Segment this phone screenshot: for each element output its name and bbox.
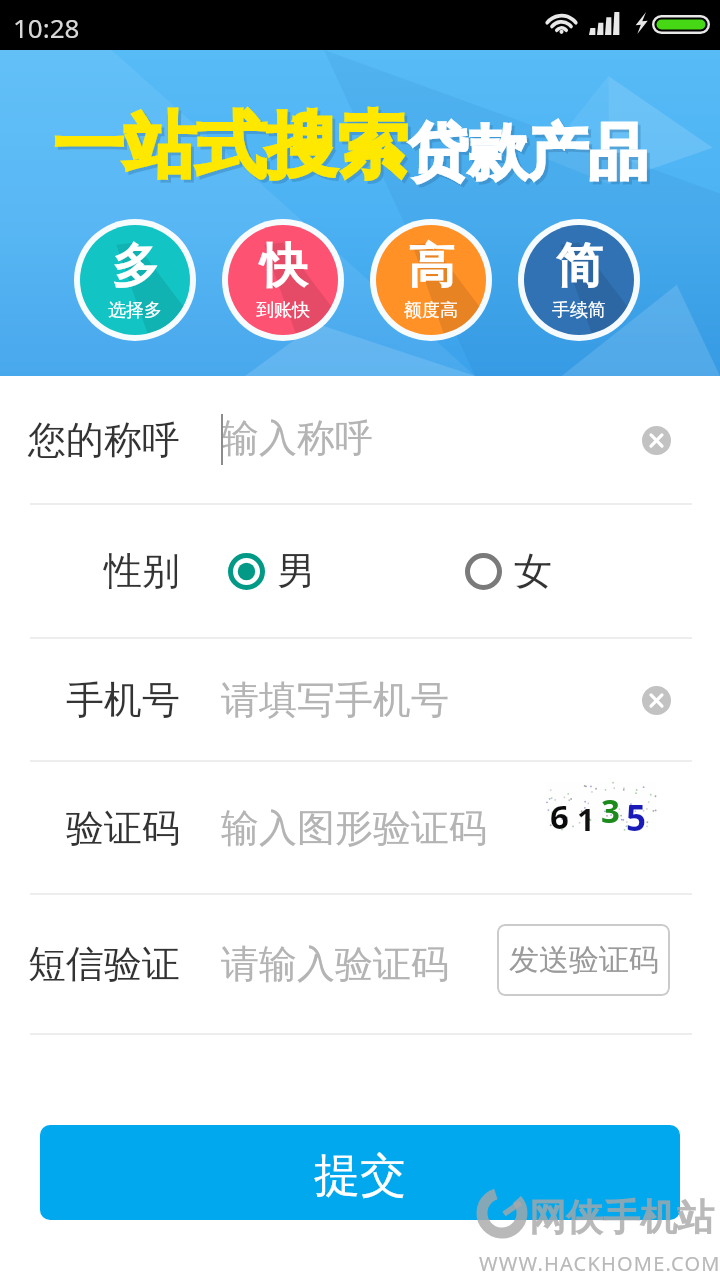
- staticText: 1: [577, 798, 595, 840]
- button[interactable]: 发送验证码: [497, 924, 670, 996]
- staticText: 网侠手机站: [529, 1194, 714, 1241]
- staticText: 额度高: [404, 299, 458, 322]
- staticText: 输入图形验证码: [221, 804, 487, 852]
- button[interactable]: Refresh captcha: [546, 782, 656, 830]
- button[interactable]: 多: [80, 225, 190, 335]
- button[interactable]: Clear: [623, 667, 689, 733]
- staticText: 验证码: [66, 804, 180, 852]
- staticText: 多: [112, 237, 159, 296]
- button[interactable]: 男: [228, 547, 315, 595]
- button[interactable]: 手机号: [0, 639, 720, 760]
- staticText: 贷款产品: [408, 115, 648, 191]
- staticText: 短信验证: [28, 940, 180, 988]
- staticText: 请填写手机号: [221, 676, 449, 724]
- staticText: 一站式搜索: [53, 102, 408, 191]
- staticText: 女: [514, 547, 552, 595]
- staticText: 请输入验证码: [221, 940, 449, 988]
- staticText: 简: [556, 237, 603, 296]
- staticText: 3: [601, 788, 620, 833]
- staticText: 到账快: [256, 299, 310, 322]
- staticText: 选择多: [108, 299, 162, 322]
- staticText: 一站式搜索: [56, 105, 411, 194]
- button[interactable]: 女: [465, 547, 552, 595]
- button[interactable]: 高: [376, 225, 486, 335]
- staticText: 5: [626, 794, 647, 842]
- staticText: 您的称呼: [28, 416, 180, 464]
- staticText: 提交: [314, 1147, 406, 1205]
- staticText: 6: [550, 794, 569, 839]
- button[interactable]: 您的称呼: [0, 376, 720, 503]
- staticText: 输入称呼: [221, 414, 373, 462]
- staticText: 10:28: [13, 10, 80, 45]
- button[interactable]: 快: [228, 225, 338, 335]
- staticText: 手续简: [552, 299, 606, 322]
- staticText: 快: [260, 237, 307, 296]
- staticText: 贷款产品: [411, 118, 651, 194]
- staticText: 男: [277, 547, 315, 595]
- staticText: WWW.HACKHOME.COM: [479, 1250, 720, 1277]
- staticText: 高: [408, 237, 455, 296]
- staticText: 发送验证码: [509, 941, 659, 979]
- button[interactable]: 提交: [40, 1125, 680, 1220]
- staticText: 性别: [104, 547, 180, 595]
- button[interactable]: 简: [524, 225, 634, 335]
- staticText: 手机号: [66, 676, 180, 724]
- button[interactable]: Clear: [623, 407, 689, 473]
